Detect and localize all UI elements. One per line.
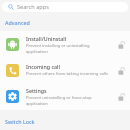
staticText: Prevent installing or uninstalling appli… (26, 43, 90, 54)
staticText: Settings (26, 87, 47, 94)
staticText: Prevent others from taking incoming call… (26, 71, 108, 77)
button[interactable]: Lock (116, 65, 127, 76)
staticText: Incoming call (26, 63, 60, 70)
button[interactable]: Lock (116, 91, 127, 102)
button[interactable]: Lock (116, 39, 127, 50)
button[interactable]: Search apps (2, 2, 128, 12)
staticText: Install/Uninstall (26, 35, 67, 42)
staticText: Prevent uninstalling or force-stop appli… (26, 95, 92, 106)
button[interactable]: Install/Uninstall (0, 31, 130, 57)
staticText: Advanced (5, 19, 30, 26)
staticText: Search apps (17, 3, 49, 11)
button[interactable]: Settings (0, 83, 130, 109)
staticText: Switch Lock (5, 118, 35, 125)
button[interactable]: Incoming call (0, 57, 130, 83)
